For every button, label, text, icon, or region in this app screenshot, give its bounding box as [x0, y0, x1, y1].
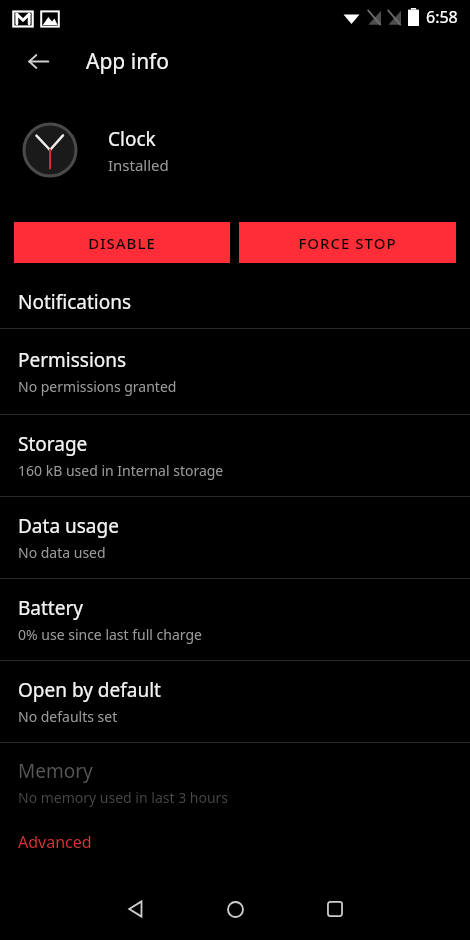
- button[interactable]: Back: [14, 37, 62, 85]
- staticText: No memory used in last 3 hours: [18, 788, 229, 807]
- staticText: Storage: [18, 431, 88, 457]
- button[interactable]: Storage: [0, 415, 470, 496]
- staticText: Installed: [108, 155, 169, 175]
- staticText: No defaults set: [18, 707, 118, 726]
- staticText: FORCE STOP: [298, 233, 397, 253]
- button[interactable]: Memory: [0, 743, 470, 821]
- staticText: Battery: [18, 595, 83, 621]
- button[interactable]: Clock: [0, 110, 470, 190]
- button[interactable]: Back: [111, 885, 159, 933]
- staticText: 0% use since last full charge: [18, 625, 202, 644]
- button[interactable]: Home: [211, 885, 259, 933]
- staticText: Open by default: [18, 677, 161, 703]
- staticText: 6:58: [426, 6, 458, 28]
- staticText: DISABLE: [88, 233, 156, 253]
- button[interactable]: Open by default: [0, 661, 470, 742]
- staticText: Permissions: [18, 347, 127, 373]
- staticText: No permissions granted: [18, 377, 177, 396]
- button[interactable]: Advanced: [0, 821, 470, 863]
- staticText: 160 kB used in Internal storage: [18, 461, 224, 480]
- staticText: Data usage: [18, 513, 119, 539]
- staticText: App info: [86, 47, 170, 76]
- staticText: Advanced: [18, 831, 92, 853]
- button[interactable]: Permissions: [0, 329, 470, 414]
- button[interactable]: Battery: [0, 579, 470, 660]
- staticText: No data used: [18, 543, 106, 562]
- button[interactable]: Recent apps: [311, 885, 359, 933]
- button[interactable]: Notifications: [0, 275, 470, 328]
- staticText: Memory: [18, 758, 93, 784]
- button[interactable]: DISABLE: [14, 222, 230, 263]
- button[interactable]: Data usage: [0, 497, 470, 578]
- staticText: Clock: [108, 126, 156, 152]
- button[interactable]: FORCE STOP: [239, 222, 456, 263]
- staticText: Notifications: [18, 289, 132, 315]
